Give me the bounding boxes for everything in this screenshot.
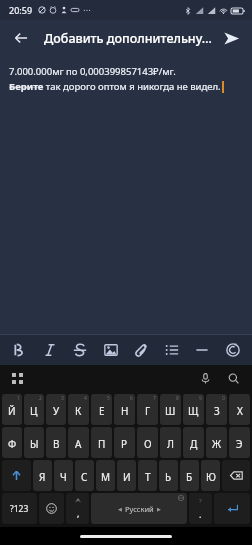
staticText: 2 [39,395,42,402]
staticText: . [199,508,202,520]
staticText: 9 [199,395,202,402]
button[interactable]: Ж [206,427,227,458]
button[interactable]: Comma [66,493,89,524]
staticText: Ю [206,470,216,484]
button[interactable]: Т [138,460,157,491]
staticText: , [77,507,80,519]
button[interactable]: В [46,427,66,458]
staticText: Г [145,404,151,418]
button[interactable]: Я [33,460,52,491]
staticText: ? [199,497,202,505]
button[interactable]: Italic [37,337,63,363]
button[interactable]: Shift [2,460,31,491]
staticText: З [214,404,220,418]
staticText: Ж [212,437,222,451]
staticText: Э [236,437,243,451]
button[interactable]: Ч [54,460,73,491]
staticText: 5 [107,395,110,402]
staticText: 4 [84,395,87,402]
staticText: Ы [30,437,39,451]
staticText: Я [39,470,46,484]
button[interactable]: 7.000.000мг по 0,000399857143₽/мг. [0,56,252,334]
staticText: 3 [61,395,64,402]
button[interactable]: И [117,460,136,491]
staticText: А [75,437,82,451]
staticText: Б [186,470,193,484]
button[interactable]: Search [222,367,244,389]
staticText: 7 [153,395,156,402]
button[interactable]: Э [229,427,250,458]
button[interactable]: Б [180,460,199,491]
button[interactable]: Back [6,23,36,53]
staticText: ▶ [157,506,161,512]
button[interactable]: Insert image [98,337,124,363]
button[interactable]: О [137,427,158,458]
staticText: Т [145,470,151,484]
staticText: И [123,470,131,484]
staticText: Д [190,437,198,451]
button[interactable]: Horizontal rule [189,337,215,363]
button[interactable]: Enter [214,493,250,524]
button[interactable]: 9 [183,394,204,425]
button[interactable]: 0 [206,394,227,425]
staticText: 7.000.000мг по 0,000399857143₽/мг. [9,65,176,78]
button[interactable]: Ф [2,427,22,458]
button[interactable]: Д [183,427,204,458]
staticText: 8 [176,395,179,402]
button[interactable]: Emoji [39,493,64,524]
staticText: Р [121,437,128,451]
button[interactable]: Insert link [128,337,154,363]
button[interactable]: Voice input [194,367,216,389]
button[interactable]: 5 [91,394,112,425]
staticText: 6 [130,395,133,402]
button[interactable]: 2 [24,394,44,425]
button[interactable]: Р [114,427,135,458]
button[interactable]: Period [189,493,212,524]
button[interactable]: Ы [24,427,44,458]
button[interactable]: Bold [6,337,32,363]
button[interactable]: М [96,460,115,491]
button[interactable]: Symbols [2,493,37,524]
button[interactable]: Space: Русский [91,493,187,524]
button[interactable]: More [220,337,246,363]
staticText: Х [237,404,243,418]
button[interactable]: Х [229,394,250,425]
staticText: В [53,437,60,451]
button[interactable]: А [68,427,89,458]
button[interactable]: Ь [159,460,178,491]
button[interactable]: 4 [68,394,89,425]
staticText: М [101,470,111,484]
button[interactable]: Strikethrough [67,337,93,363]
staticText: Щ [188,404,199,418]
staticText: 0 [222,395,225,402]
staticText: Ч [60,470,67,484]
staticText: О [144,437,152,451]
button[interactable]: Send [216,23,246,53]
button[interactable]: 8 [160,394,181,425]
staticText: Берите так дорого оптом я никогда не вид… [9,80,221,93]
button[interactable]: П [91,427,112,458]
button[interactable]: Ю [201,460,220,491]
button[interactable]: Backspace [222,460,250,491]
button[interactable]: 7 [137,394,158,425]
button[interactable]: 3 [46,394,66,425]
staticText: Й [8,404,16,418]
staticText: Ц [30,404,38,418]
staticText: Ш [165,404,176,418]
staticText: Е [99,404,105,418]
staticText: ◀ [118,506,122,512]
staticText: Добавить дополнительну… [44,30,212,47]
staticText: С [81,470,88,484]
button[interactable]: С [75,460,94,491]
staticText: Л [167,437,174,451]
staticText: 20:59 [9,4,33,16]
staticText: 1 [17,395,20,402]
button[interactable]: Л [160,427,181,458]
staticText: Н [121,404,129,418]
button[interactable]: Keyboard options [6,367,28,389]
button[interactable]: 1 [2,394,22,425]
staticText: У [53,404,60,418]
button[interactable]: Bulleted list [159,337,185,363]
button[interactable]: 6 [114,394,135,425]
staticText: Ф [8,437,17,451]
